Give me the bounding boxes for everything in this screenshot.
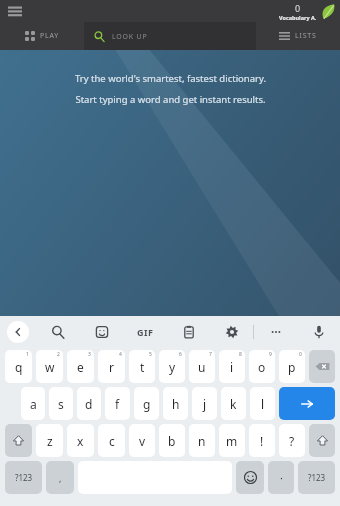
- staticText: a: [30, 396, 37, 412]
- button[interactable]: Clipboard: [167, 316, 210, 348]
- button[interactable]: GIF: [124, 316, 167, 348]
- button[interactable]: LOOK UP: [84, 22, 256, 50]
- staticText: Start typing a word and get instant resu…: [75, 93, 266, 106]
- button[interactable]: Menu: [0, 0, 30, 22]
- button[interactable]: w: [36, 350, 63, 383]
- staticText: 6: [179, 351, 182, 358]
- button[interactable]: ·: [268, 461, 294, 494]
- button[interactable]: Voice input: [297, 316, 340, 348]
- staticText: ,: [59, 472, 62, 484]
- button[interactable]: Shift: [309, 424, 335, 457]
- button[interactable]: Search: [36, 316, 80, 348]
- staticText: LOOK UP: [112, 32, 148, 42]
- staticText: e: [77, 359, 84, 375]
- button[interactable]: g: [134, 387, 159, 420]
- staticText: y: [169, 359, 176, 375]
- staticText: 9: [269, 351, 272, 358]
- button[interactable]: m: [219, 424, 245, 457]
- button[interactable]: y: [159, 350, 185, 383]
- staticText: s: [58, 396, 64, 412]
- staticText: h: [172, 396, 180, 412]
- staticText: w: [45, 359, 55, 375]
- staticText: n: [198, 433, 206, 449]
- staticText: p: [288, 359, 296, 375]
- button[interactable]: a: [21, 387, 45, 420]
- staticText: f: [115, 396, 120, 412]
- button[interactable]: Emoji: [236, 461, 264, 494]
- staticText: Vocabulary A.: [279, 14, 317, 21]
- button[interactable]: k: [221, 387, 246, 420]
- staticText: Try the world's smartest, fastest dictio…: [75, 72, 266, 85]
- staticText: GIF: [137, 326, 154, 338]
- staticText: ?123: [308, 472, 326, 483]
- button[interactable]: b: [159, 424, 185, 457]
- staticText: o: [258, 359, 266, 375]
- staticText: 3: [88, 351, 91, 358]
- button[interactable]: d: [77, 387, 101, 420]
- button[interactable]: s: [49, 387, 73, 420]
- button[interactable]: LISTS: [256, 22, 340, 50]
- button[interactable]: n: [189, 424, 215, 457]
- button[interactable]: Shift: [5, 424, 32, 457]
- staticText: 7: [209, 351, 212, 358]
- staticText: 8: [239, 351, 242, 358]
- staticText: 1: [26, 351, 29, 358]
- button[interactable]: p: [279, 350, 305, 383]
- button[interactable]: z: [36, 424, 63, 457]
- staticText: d: [85, 396, 93, 412]
- staticText: u: [198, 359, 206, 375]
- staticText: g: [143, 396, 151, 412]
- button[interactable]: !: [249, 424, 275, 457]
- button[interactable]: ?123: [298, 461, 335, 494]
- staticText: v: [139, 433, 146, 449]
- staticText: r: [109, 359, 114, 375]
- button[interactable]: ,: [46, 461, 74, 494]
- staticText: LISTS: [295, 31, 317, 41]
- button[interactable]: q: [5, 350, 32, 383]
- staticText: m: [226, 433, 238, 449]
- staticText: 0: [295, 2, 301, 14]
- button[interactable]: ?123: [5, 461, 42, 494]
- staticText: ?: [289, 433, 295, 449]
- staticText: c: [109, 433, 115, 449]
- staticText: t: [140, 359, 145, 375]
- staticText: x: [77, 433, 84, 449]
- staticText: j: [203, 396, 207, 412]
- button[interactable]: PLAY: [0, 22, 84, 50]
- button[interactable]: i: [219, 350, 245, 383]
- button[interactable]: x: [67, 424, 94, 457]
- button[interactable]: u: [189, 350, 215, 383]
- staticText: k: [230, 396, 237, 412]
- staticText: q: [15, 359, 23, 375]
- button[interactable]: Enter: [279, 387, 335, 420]
- button[interactable]: v: [129, 424, 155, 457]
- button[interactable]: Backspace: [309, 350, 335, 383]
- staticText: PLAY: [40, 31, 60, 41]
- staticText: b: [168, 433, 176, 449]
- button[interactable]: 0: [279, 2, 337, 21]
- button[interactable]: h: [163, 387, 188, 420]
- staticText: !: [260, 433, 264, 449]
- staticText: 4: [119, 351, 122, 358]
- button[interactable]: ?: [279, 424, 305, 457]
- button[interactable]: More options: [254, 316, 297, 348]
- button[interactable]: Stickers: [80, 316, 124, 348]
- staticText: z: [47, 433, 53, 449]
- staticText: ·: [280, 470, 283, 485]
- button[interactable]: Settings: [210, 316, 253, 348]
- button[interactable]: Back: [0, 316, 36, 348]
- button[interactable]: l: [250, 387, 275, 420]
- staticText: i: [230, 359, 234, 375]
- staticText: l: [261, 396, 265, 412]
- button[interactable]: r: [98, 350, 125, 383]
- button[interactable]: j: [192, 387, 217, 420]
- button[interactable]: t: [129, 350, 155, 383]
- staticText: 0: [299, 351, 302, 358]
- button[interactable]: o: [249, 350, 275, 383]
- button[interactable]: c: [98, 424, 125, 457]
- staticText: 2: [57, 351, 60, 358]
- button[interactable]: f: [105, 387, 130, 420]
- button[interactable]: e: [67, 350, 94, 383]
- staticText: 5: [149, 351, 152, 358]
